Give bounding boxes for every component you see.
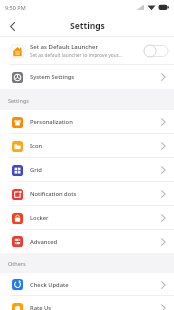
staticText: Others (8, 260, 26, 267)
staticText: Grid (30, 166, 161, 174)
button[interactable]: Locker (0, 206, 174, 230)
staticText: 9:50 PM (5, 4, 26, 11)
staticText: Settings (70, 20, 105, 32)
button[interactable]: Personalization (0, 110, 174, 134)
staticText: Check Update (30, 281, 161, 289)
staticText: Rate Us (30, 304, 161, 310)
staticText: Locker (30, 214, 161, 222)
staticText: Set as default launcher to improve your.… (30, 52, 122, 59)
staticText: Personalization (30, 118, 161, 126)
button[interactable] (5, 19, 19, 33)
button[interactable] (143, 44, 169, 58)
button[interactable]: Set as Default Launcher (0, 37, 174, 65)
staticText: Icon (30, 142, 161, 150)
button[interactable]: Notification dots (0, 182, 174, 206)
staticText: System Settings (30, 73, 161, 81)
button[interactable]: Advanced (0, 230, 174, 253)
staticText: Advanced (30, 238, 161, 246)
button[interactable]: System Settings (0, 65, 174, 89)
button[interactable]: Rate Us (0, 296, 174, 310)
staticText: Notification dots (30, 190, 161, 198)
button[interactable]: Check Update (0, 273, 174, 296)
button[interactable]: Icon (0, 134, 174, 158)
button[interactable]: Grid (0, 158, 174, 182)
staticText: Set as Default Launcher (30, 43, 99, 51)
staticText: Settings (8, 97, 29, 104)
